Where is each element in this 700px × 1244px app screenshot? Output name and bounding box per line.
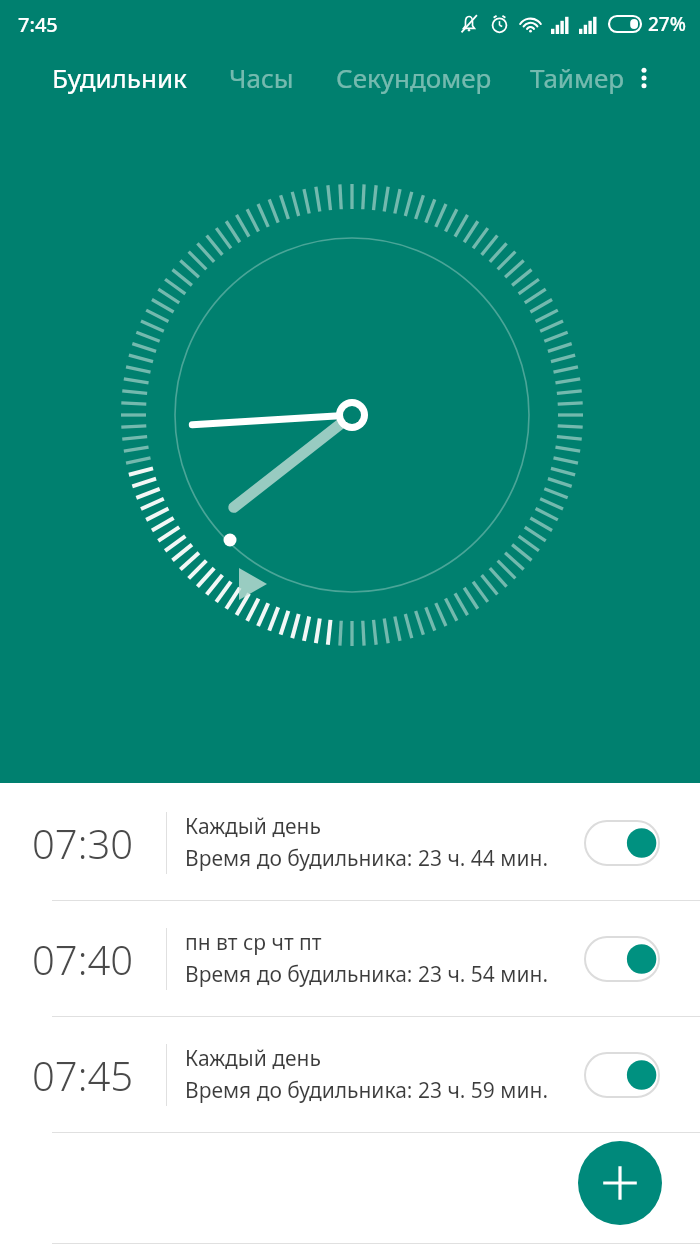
staticText: Секундомер [336, 60, 492, 95]
staticText: 07:40 [32, 932, 134, 986]
button[interactable]: 07:45 [0, 1017, 700, 1132]
staticText: Время до будильника: 23 ч. 44 мин. [185, 844, 549, 873]
button[interactable]: Alarm enabled toggle [584, 936, 660, 982]
staticText: Таймер [530, 60, 625, 95]
staticText: Часы [229, 60, 294, 95]
button[interactable]: Часы [229, 60, 294, 95]
staticText: Время до будильника: 23 ч. 54 мин. [185, 960, 549, 989]
button[interactable]: Alarm enabled toggle [584, 1052, 660, 1098]
button[interactable]: 07:40 [0, 901, 700, 1016]
staticText: 7:45 [18, 11, 58, 38]
button[interactable]: Alarm enabled toggle [584, 820, 660, 866]
button[interactable]: Секундомер [336, 60, 492, 95]
staticText: Время до будильника: 23 ч. 59 мин. [185, 1076, 549, 1105]
staticText: Каждый день [185, 812, 321, 841]
staticText: 07:30 [32, 816, 134, 870]
button[interactable]: Таймер [530, 60, 625, 95]
staticText: 27% [648, 11, 686, 37]
staticText: пн вт ср чт пт [185, 928, 322, 957]
button[interactable]: 07:30 [0, 785, 700, 900]
button[interactable]: Будильник [52, 60, 187, 95]
staticText: 07:45 [32, 1048, 134, 1102]
staticText: Каждый день [185, 1044, 321, 1073]
staticText: Будильник [52, 60, 187, 95]
button[interactable]: Add alarm [578, 1141, 662, 1225]
button[interactable]: More options [627, 61, 661, 95]
